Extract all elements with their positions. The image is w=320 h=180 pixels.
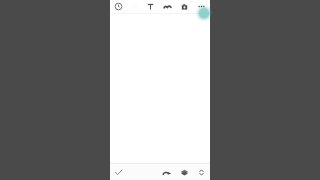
button[interactable]: Eraser: [176, 165, 193, 180]
button[interactable]: Done: [110, 165, 126, 180]
button[interactable]: Drawing: [159, 0, 176, 13]
button[interactable]: Set reminder: [110, 0, 126, 13]
button[interactable]: Redo: [159, 165, 176, 180]
button[interactable]: Take photo: [176, 0, 193, 13]
button[interactable]: More options: [193, 0, 210, 13]
button[interactable]: Note body: [110, 14, 210, 163]
button[interactable]: Formatting: [142, 0, 159, 13]
button[interactable]: Expand toolbar: [193, 165, 210, 180]
